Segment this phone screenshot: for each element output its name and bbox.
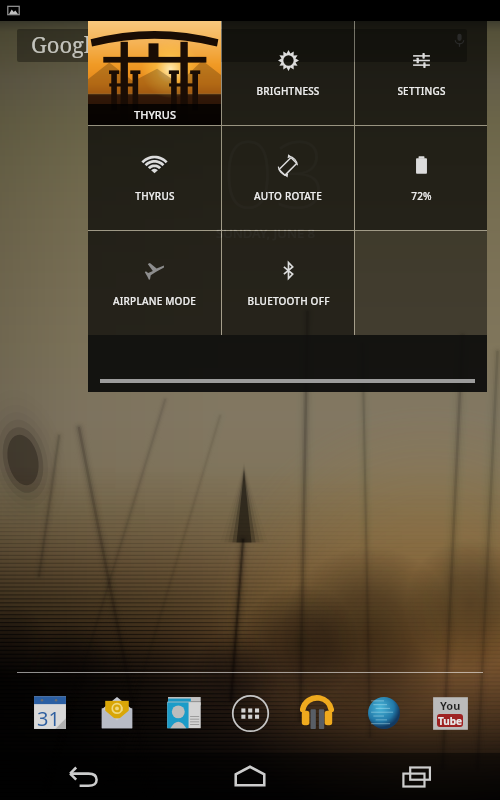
staticText: BRIGHTNESS	[256, 84, 320, 98]
button[interactable]: AIRPLANE MODE	[88, 231, 221, 335]
staticText: You	[440, 698, 461, 713]
button[interactable]: BLUETOOTH OFF	[222, 231, 354, 335]
button[interactable]: Browser	[360, 689, 408, 737]
button[interactable]: THYRUS	[88, 126, 221, 230]
staticText: 31	[37, 705, 60, 732]
button[interactable]: YouTube	[426, 689, 474, 737]
button[interactable]: SETTINGS	[355, 21, 487, 125]
staticText: THYRUS	[135, 189, 175, 203]
button[interactable]: Play Music	[293, 689, 341, 737]
button[interactable]: Google	[17, 29, 467, 62]
button[interactable]: People	[160, 689, 208, 737]
other: Screenshot captured	[7, 4, 20, 17]
staticText: Tube	[438, 714, 463, 727]
button[interactable]: Home	[166, 753, 333, 800]
staticText: AIRPLANE MODE	[113, 294, 196, 308]
button[interactable]: Calendar	[26, 689, 74, 737]
staticText: BLUETOOTH OFF	[247, 294, 330, 308]
button[interactable]: Email	[93, 689, 141, 737]
staticText: Google	[31, 29, 103, 59]
button[interactable]: 72%	[355, 126, 487, 230]
button[interactable]: Recent apps	[333, 753, 500, 800]
staticText: SETTINGS	[397, 84, 446, 98]
button[interactable]: THYRUS	[88, 21, 221, 125]
staticText: AUTO ROTATE	[254, 189, 322, 203]
staticText: 72%	[411, 189, 432, 203]
button[interactable]: Back	[0, 753, 166, 800]
button[interactable]: AUTO ROTATE	[222, 126, 354, 230]
staticText: THYRUS	[134, 107, 176, 122]
button[interactable]: All apps	[226, 689, 274, 737]
button[interactable]: BRIGHTNESS	[222, 21, 354, 125]
staticText: 03	[222, 110, 327, 235]
other: Voice search	[452, 33, 467, 48]
staticText: SUNDAY, JUNE 8	[216, 224, 316, 242]
